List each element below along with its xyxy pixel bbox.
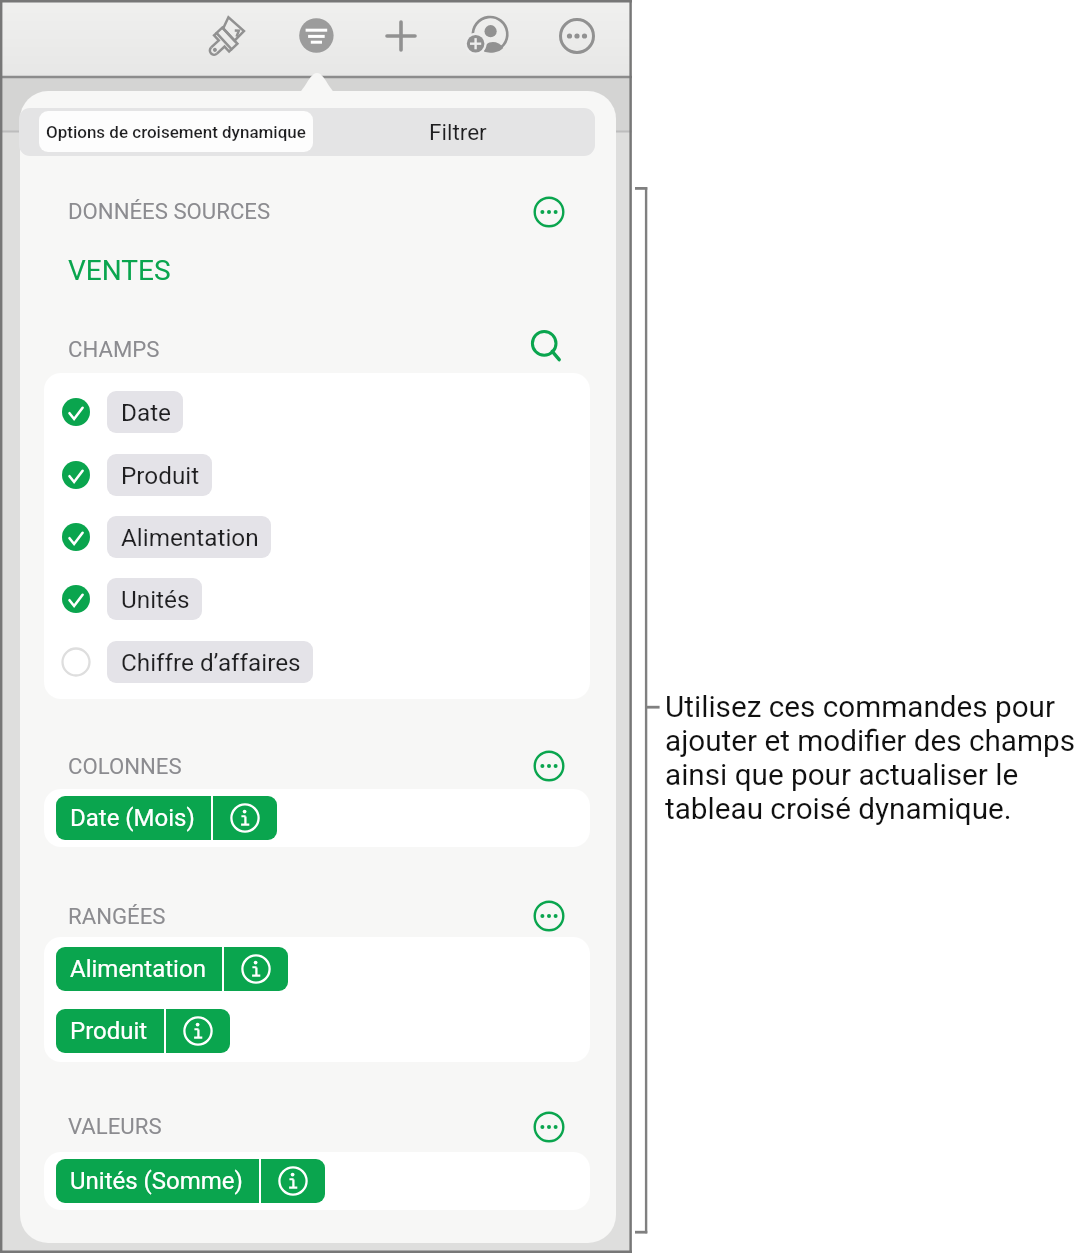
button[interactable]: More options (521, 888, 577, 944)
button[interactable]: More (548, 7, 606, 65)
button[interactable]: Options de croisement dynamique (39, 111, 313, 152)
button[interactable]: Organize (288, 7, 346, 65)
staticText: DONNÉES SOURCES (68, 198, 271, 224)
button[interactable]: More options (521, 1099, 577, 1155)
button[interactable]: Insert (372, 7, 430, 65)
staticText: Unités (121, 585, 190, 613)
staticText: Options de croisement dynamique (46, 122, 306, 142)
staticText: Alimentation (121, 523, 259, 551)
button[interactable]: Date (Mois) (56, 796, 277, 840)
button[interactable]: Unités (Somme) (56, 1159, 325, 1203)
staticText: VENTES (68, 254, 171, 287)
staticText: Produit (121, 461, 200, 489)
staticText: Date (121, 398, 171, 426)
staticText: Produit (70, 1017, 148, 1045)
button[interactable]: Produit (56, 1009, 230, 1053)
staticText: Unités (Somme) (70, 1167, 243, 1195)
button[interactable]: Search (518, 317, 574, 373)
staticText: Utilisez ces commandes pour ajouter et m… (665, 689, 1077, 826)
button[interactable]: Info (213, 796, 277, 840)
button[interactable]: Chiffre d’affaires (60, 636, 313, 688)
button[interactable]: Date (60, 386, 183, 438)
button[interactable]: Collaborate (458, 7, 516, 65)
staticText: COLONNES (68, 753, 182, 779)
staticText: RANGÉES (68, 903, 166, 929)
button[interactable]: Unités (60, 573, 202, 625)
button[interactable]: Filtrer (320, 108, 595, 156)
staticText: CHAMPS (68, 336, 160, 362)
button[interactable]: Produit (60, 449, 212, 501)
button[interactable]: Alimentation (56, 947, 288, 991)
staticText: VALEURS (68, 1113, 162, 1139)
button[interactable]: Format (196, 8, 254, 66)
staticText: Date (Mois) (70, 804, 195, 832)
staticText: Chiffre d’affaires (121, 648, 301, 676)
button[interactable]: Info (166, 1009, 230, 1053)
staticText: Filtrer (429, 119, 487, 145)
button[interactable]: More options (521, 184, 577, 240)
button[interactable]: Info (224, 947, 288, 991)
button[interactable]: Alimentation (60, 511, 271, 563)
button[interactable]: Info (261, 1159, 325, 1203)
staticText: Alimentation (70, 955, 206, 983)
button[interactable]: More options (521, 738, 577, 794)
